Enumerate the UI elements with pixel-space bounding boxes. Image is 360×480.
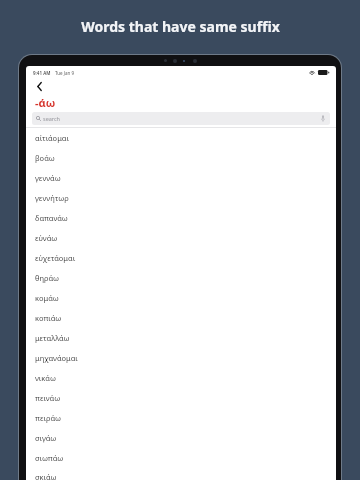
staticText: search [43,115,61,122]
button[interactable]: σιγάω [26,428,336,448]
button[interactable]: γεννάω [26,168,336,188]
button[interactable]: Voice search [319,113,326,124]
staticText: πειράω [35,413,62,423]
staticText: πεινάω [35,393,61,403]
staticText: -άω [35,95,56,110]
button[interactable]: εὐνάω [26,228,336,248]
button[interactable]: γεννήτωρ [26,188,336,208]
staticText: εὐχετάομαι [35,253,76,263]
button[interactable]: σκιάω [26,468,336,480]
staticText: γεννάω [35,173,61,183]
button[interactable]: πεινάω [26,388,336,408]
staticText: νικάω [35,373,56,383]
button[interactable]: μηχανάομαι [26,348,336,368]
button[interactable]: κοπιάω [26,308,336,328]
staticText: εὐνάω [35,233,58,243]
button[interactable]: εὐχετάομαι [26,248,336,268]
staticText: σιωπάω [35,453,64,463]
button[interactable]: πειράω [26,408,336,428]
button[interactable]: θηράω [26,268,336,288]
button[interactable]: νικάω [26,368,336,388]
staticText: κομάω [35,293,59,303]
staticText: σιγάω [35,433,57,443]
staticText: Words that have same suffix [81,17,280,36]
button[interactable]: search [32,112,330,125]
button[interactable]: δαπανάω [26,208,336,228]
staticText: κοπιάω [35,313,62,323]
button[interactable]: αἰτιάομαι [26,128,336,148]
staticText: αἰτιάομαι [35,133,69,143]
button[interactable]: Back [31,79,47,94]
staticText: μηχανάομαι [35,353,78,363]
staticText: γεννήτωρ [35,193,69,203]
button[interactable]: βοάω [26,148,336,168]
button[interactable]: σιωπάω [26,448,336,468]
button[interactable]: κομάω [26,288,336,308]
staticText: μεταλλάω [35,333,70,343]
staticText: σκιάω [35,472,57,480]
staticText: Tue Jan 9 [55,70,75,76]
staticText: βοάω [35,153,55,163]
staticText: δαπανάω [35,213,68,223]
staticText: 9:41 AM [33,70,51,76]
staticText: θηράω [35,273,60,283]
button[interactable]: μεταλλάω [26,328,336,348]
